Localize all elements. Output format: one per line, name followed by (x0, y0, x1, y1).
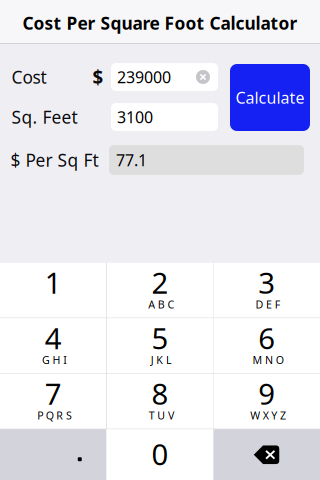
staticText: 7 (45, 374, 62, 413)
staticText: Sq. Feet (11, 105, 77, 128)
staticText: 0 (151, 434, 168, 473)
button[interactable]: 7 (0, 374, 106, 429)
staticText: 1 (45, 263, 62, 302)
staticText: Calculate (235, 87, 304, 108)
staticText: MNO (252, 353, 284, 367)
staticText: TUV (149, 408, 174, 422)
button[interactable]: 4 (0, 318, 106, 373)
staticText: 3 (258, 263, 275, 302)
staticText: 4 (45, 318, 62, 357)
button[interactable]: 3 (213, 263, 320, 318)
button[interactable]: 9 (213, 374, 320, 429)
staticText: $ (92, 65, 103, 89)
staticText: JKL (151, 353, 172, 367)
button[interactable]: Delete (213, 429, 320, 480)
staticText: 6 (258, 318, 275, 357)
staticText: 9 (258, 374, 275, 413)
button[interactable]: 2 (107, 263, 213, 318)
staticText: 3100 (117, 106, 153, 128)
staticText: GHI (42, 353, 67, 367)
staticText: 239000 (117, 66, 171, 88)
button[interactable]: 5 (107, 318, 213, 373)
button[interactable]: Decimal point (0, 429, 106, 480)
staticText: 5 (151, 318, 168, 357)
staticText: Cost (11, 65, 46, 88)
button[interactable]: Calculate (230, 64, 310, 131)
staticText: 77.1 (116, 149, 147, 171)
button[interactable]: 1 (0, 263, 106, 318)
staticText: $ Per Sq Ft (10, 148, 98, 171)
staticText: PQRS (37, 408, 72, 422)
button[interactable]: 0 (106, 429, 213, 480)
staticText: 8 (151, 374, 168, 413)
staticText: DEF (255, 297, 281, 311)
staticText: WXYZ (250, 408, 286, 422)
staticText: 2 (151, 263, 168, 302)
staticText: ABC (148, 297, 174, 311)
button[interactable]: 6 (213, 318, 320, 373)
button[interactable]: 8 (107, 374, 213, 429)
staticText: Cost Per Square Foot Calculator (22, 11, 297, 34)
